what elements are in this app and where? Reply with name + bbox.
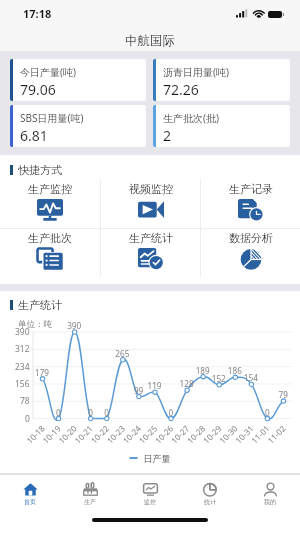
button[interactable]: 监控 bbox=[120, 475, 180, 512]
button[interactable]: 视频监控 bbox=[101, 180, 200, 228]
staticText: 17:18 bbox=[23, 6, 52, 21]
button[interactable]: 统计 bbox=[180, 475, 240, 512]
staticText: 我的 bbox=[264, 498, 276, 506]
button[interactable]: 数据分析 bbox=[201, 229, 300, 276]
staticText: 生产统计 bbox=[18, 298, 62, 312]
button[interactable]: 沥青日用量(吨) bbox=[153, 59, 290, 101]
staticText: 数据分析 bbox=[229, 231, 273, 245]
button[interactable]: SBS日用量(吨) bbox=[10, 105, 146, 147]
button[interactable]: 生产 bbox=[60, 475, 120, 512]
button[interactable]: 生产统计 bbox=[101, 229, 200, 276]
staticText: 生产批次 bbox=[28, 231, 72, 245]
button[interactable]: 首页 bbox=[0, 475, 60, 512]
staticText: 生产记录 bbox=[229, 182, 273, 196]
staticText: 生产 bbox=[84, 498, 96, 506]
staticText: 生产批次(批) bbox=[163, 111, 219, 125]
button[interactable]: 生产批次(批) bbox=[153, 105, 290, 147]
staticText: 今日产量(吨) bbox=[20, 65, 76, 79]
staticText: SBS日用量(吨) bbox=[20, 111, 84, 125]
button[interactable]: 生产记录 bbox=[201, 180, 300, 228]
button[interactable]: 我的 bbox=[240, 475, 300, 512]
staticText: 沥青日用量(吨) bbox=[163, 65, 229, 79]
button[interactable]: 生产监控 bbox=[0, 180, 100, 228]
staticText: 79.06 bbox=[20, 80, 56, 99]
staticText: 生产统计 bbox=[129, 231, 173, 245]
button[interactable]: 今日产量(吨) bbox=[10, 59, 146, 101]
other: Status icons bbox=[236, 8, 286, 20]
staticText: 2 bbox=[163, 126, 172, 145]
staticText: 生产监控 bbox=[28, 182, 72, 196]
staticText: 监控 bbox=[144, 498, 156, 506]
staticText: 6.81 bbox=[20, 126, 48, 145]
staticText: 视频监控 bbox=[129, 182, 173, 196]
staticText: 统计 bbox=[204, 498, 216, 506]
staticText: 72.26 bbox=[163, 80, 199, 99]
button[interactable]: 生产批次 bbox=[0, 229, 100, 276]
staticText: 中航国际 bbox=[125, 33, 175, 49]
staticText: 首页 bbox=[24, 498, 36, 506]
staticText: 快捷方式 bbox=[18, 163, 62, 177]
